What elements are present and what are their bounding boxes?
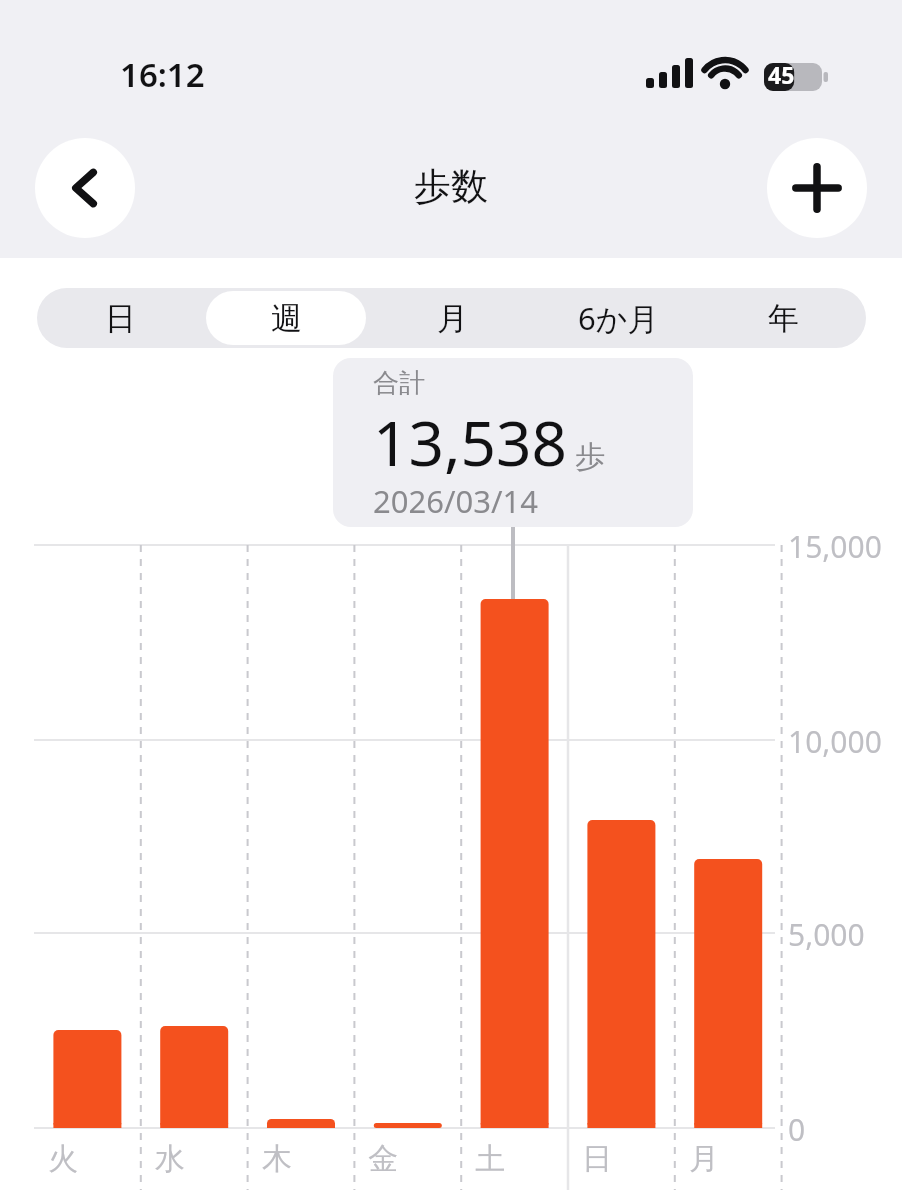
button[interactable]: 戻る — [35, 138, 135, 238]
staticText: 10,000 — [788, 721, 882, 762]
staticText: 2026/03/14 — [373, 480, 538, 522]
button[interactable]: 6か月 — [535, 288, 701, 348]
staticText: 火 — [48, 1140, 78, 1178]
staticText: 土 — [475, 1140, 505, 1178]
staticText: 15,000 — [788, 526, 882, 567]
staticText: 0 — [788, 1109, 806, 1150]
staticText: 日 — [105, 299, 136, 338]
button[interactable]: 月 — [369, 288, 535, 348]
staticText: 6か月 — [578, 297, 659, 339]
staticText: 歩 — [575, 438, 605, 476]
staticText: 日 — [582, 1140, 612, 1178]
staticText: 13,538 — [373, 400, 567, 484]
staticText: 木 — [262, 1140, 292, 1178]
staticText: 週 — [271, 299, 302, 338]
staticText: 歩数 — [414, 163, 488, 210]
staticText: 月 — [437, 299, 468, 338]
staticText: 金 — [368, 1140, 398, 1178]
staticText: 16:12 — [120, 52, 205, 97]
button[interactable]: 年 — [701, 288, 866, 348]
staticText: 合計 — [373, 367, 425, 400]
button[interactable]: 追加 — [767, 138, 867, 238]
staticText: 年 — [768, 299, 799, 338]
button[interactable]: 合計 — [333, 358, 693, 527]
staticText: 水 — [155, 1140, 185, 1178]
staticText: 月 — [689, 1140, 719, 1178]
button[interactable]: 週 — [203, 288, 369, 348]
staticText: 45 — [768, 59, 795, 90]
staticText: 5,000 — [788, 914, 865, 955]
button[interactable]: 日 — [37, 288, 203, 348]
